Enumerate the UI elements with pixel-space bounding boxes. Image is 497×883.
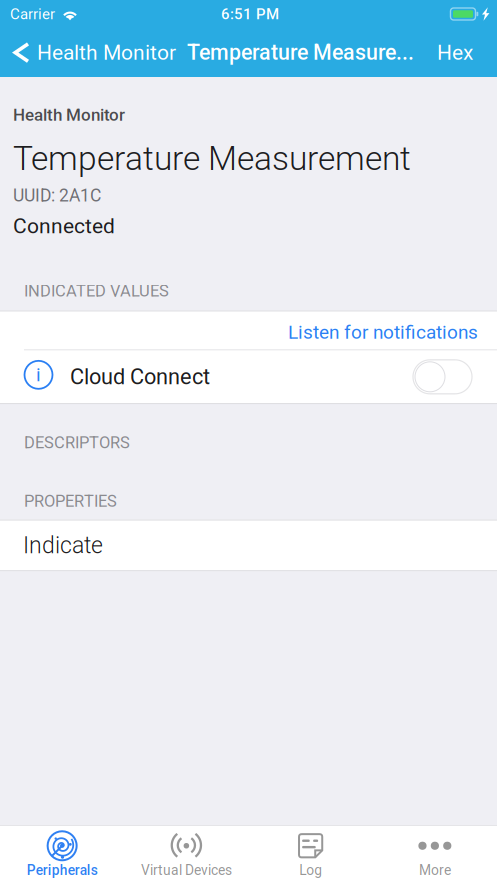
staticText: Peripherals [27, 862, 98, 878]
staticText: Connected [13, 214, 115, 238]
staticText: i [36, 364, 41, 386]
staticText: PROPERTIES [24, 491, 117, 511]
staticText: Temperature Measurement [13, 139, 411, 178]
button[interactable]: Health Monitor [0, 28, 184, 77]
button[interactable]: Listen for notifications [0, 311, 497, 349]
staticText: Indicate [23, 532, 103, 559]
staticText: INDICATED VALUES [24, 281, 169, 301]
staticText: DESCRIPTORS [24, 433, 130, 452]
staticText: Carrier [10, 5, 55, 23]
staticText: Listen for notifications [288, 321, 478, 343]
button[interactable]: Hex [413, 28, 497, 77]
staticText: Health Monitor [13, 105, 125, 125]
button[interactable]: More [373, 827, 497, 881]
staticText: Health Monitor [37, 40, 176, 65]
button[interactable]: Log [248, 827, 373, 881]
staticText: More [419, 862, 451, 878]
button[interactable]: Peripherals [0, 827, 124, 881]
staticText: Virtual Devices [141, 862, 232, 878]
staticText: Cloud Connect [70, 364, 210, 389]
staticText: UUID: 2A1C [13, 185, 101, 206]
staticText: Log [299, 862, 322, 878]
staticText: Hex [437, 40, 473, 65]
staticText: Temperature Measure... [187, 40, 414, 65]
button[interactable]: Cloud Connect toggle [413, 360, 472, 394]
button[interactable]: Virtual Devices [124, 827, 248, 881]
staticText: 6:51 PM [221, 5, 279, 23]
